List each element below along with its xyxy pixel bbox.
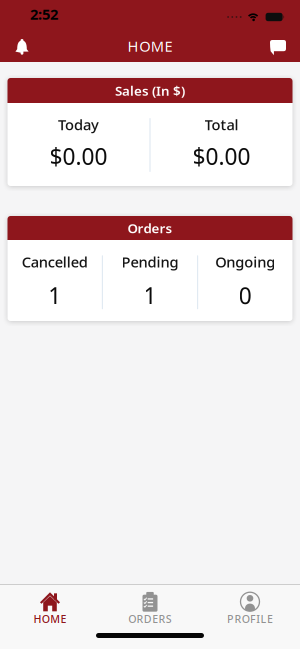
staticText: PROFILE bbox=[227, 612, 273, 626]
staticText: 1 bbox=[48, 280, 61, 311]
staticText: Sales (In $) bbox=[115, 82, 185, 99]
staticText: $0.00 bbox=[49, 141, 107, 171]
staticText: 2:52 bbox=[30, 4, 58, 24]
staticText: $0.00 bbox=[192, 141, 250, 171]
button[interactable]: Notifications bbox=[0, 38, 29, 54]
staticText: ORDERS bbox=[128, 612, 172, 626]
staticText: Orders bbox=[127, 219, 172, 237]
button[interactable]: Orders bbox=[100, 592, 200, 626]
staticText: 1 bbox=[143, 280, 156, 311]
button[interactable]: Messages bbox=[270, 38, 300, 54]
staticText: HOME bbox=[128, 36, 172, 56]
staticText: Today bbox=[58, 115, 99, 134]
staticText: Ongoing bbox=[215, 252, 275, 271]
staticText: Pending bbox=[121, 252, 178, 271]
staticText: HOME bbox=[34, 612, 66, 626]
button[interactable]: Profile bbox=[200, 592, 300, 626]
staticText: 0 bbox=[239, 280, 252, 311]
staticText: Total bbox=[204, 115, 238, 134]
staticText: Cancelled bbox=[22, 252, 88, 271]
button[interactable]: Home bbox=[0, 592, 100, 626]
